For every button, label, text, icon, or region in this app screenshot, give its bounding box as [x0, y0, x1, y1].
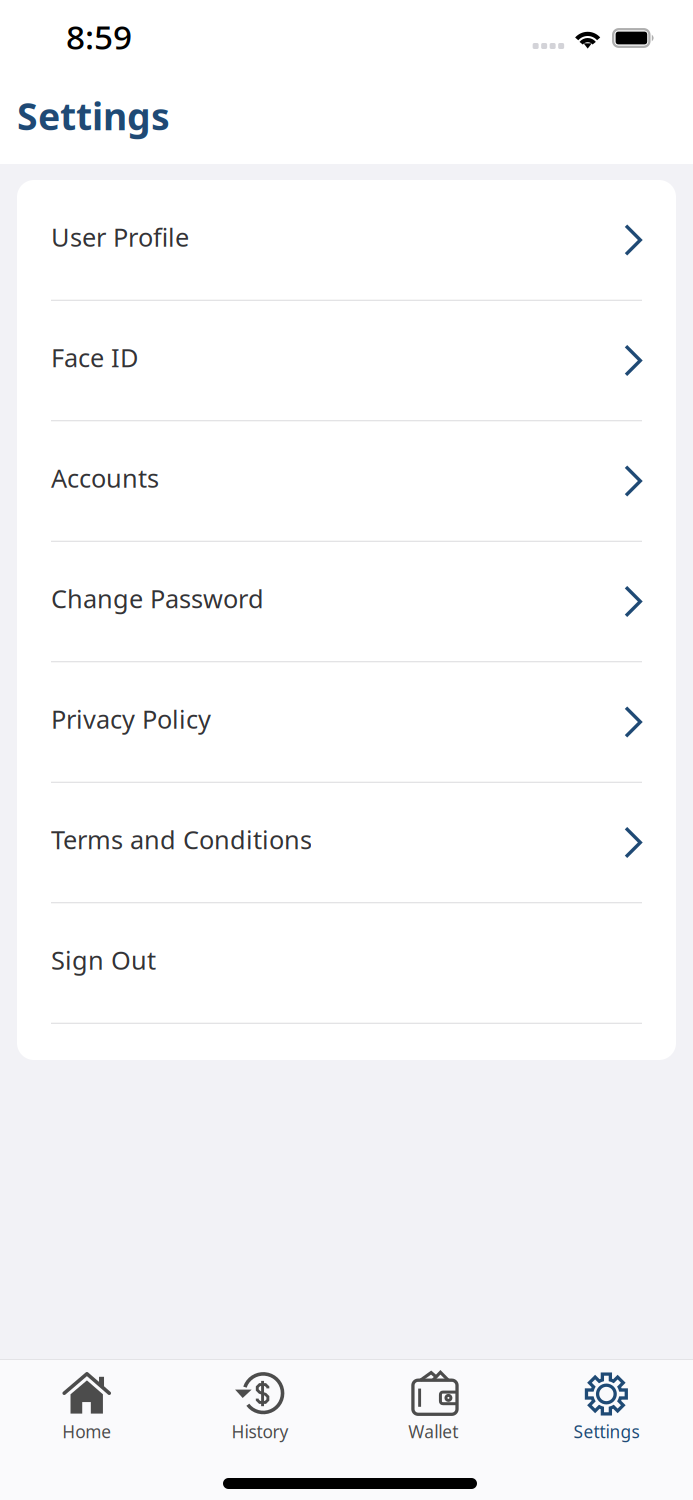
- button[interactable]: Home: [0, 1372, 173, 1440]
- staticText: History: [231, 1420, 288, 1443]
- button[interactable]: Settings: [520, 1372, 693, 1440]
- staticText: Settings: [17, 91, 170, 141]
- button[interactable]: Wallet: [346, 1372, 520, 1440]
- staticText: Change Password: [51, 582, 264, 615]
- button[interactable]: Terms and Conditions: [17, 783, 676, 903]
- staticText: User Profile: [51, 220, 189, 254]
- staticText: Settings: [573, 1420, 639, 1443]
- button[interactable]: Accounts: [17, 421, 676, 542]
- staticText: Sign Out: [51, 943, 156, 977]
- staticText: Face ID: [51, 341, 138, 374]
- button[interactable]: Sign Out: [17, 903, 676, 1024]
- staticText: Privacy Policy: [51, 702, 211, 736]
- staticText: Accounts: [51, 461, 159, 495]
- staticText: Home: [62, 1420, 111, 1443]
- button[interactable]: Face ID: [17, 301, 676, 421]
- button[interactable]: Change Password: [17, 542, 676, 662]
- staticText: 8:59: [66, 14, 132, 59]
- button[interactable]: Privacy Policy: [17, 662, 676, 783]
- staticText: Wallet: [408, 1420, 458, 1443]
- button[interactable]: User Profile: [17, 180, 676, 301]
- button[interactable]: History: [173, 1372, 346, 1440]
- staticText: Terms and Conditions: [51, 823, 312, 856]
